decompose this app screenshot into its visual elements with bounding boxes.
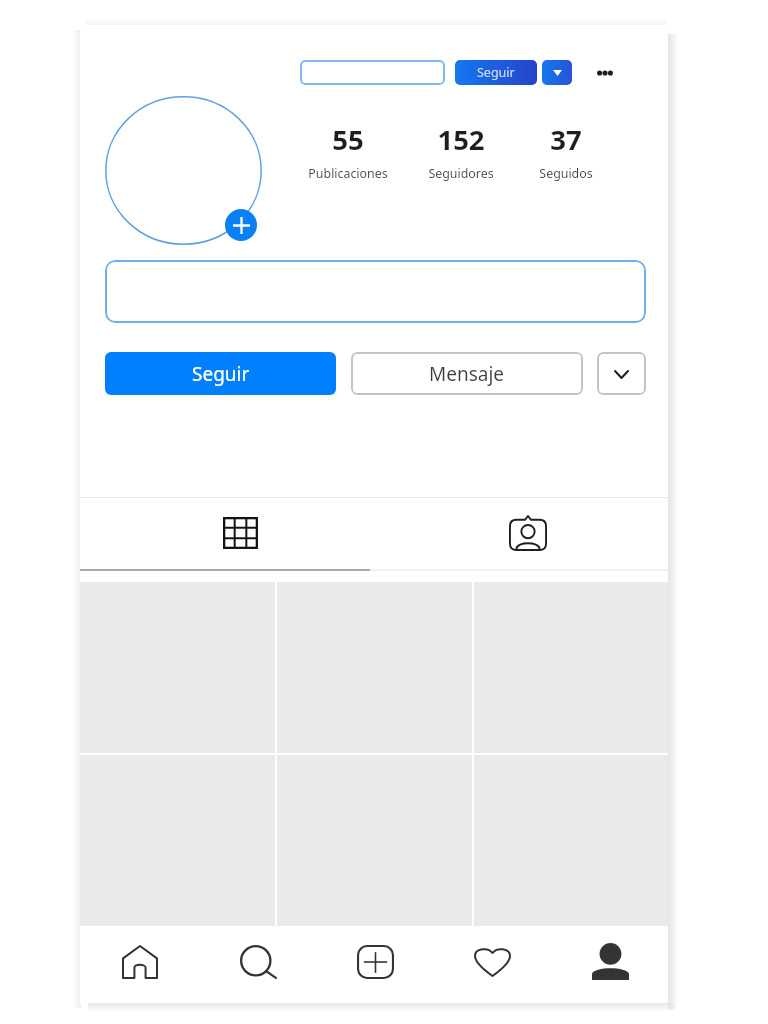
button[interactable]: 37 (486, 121, 646, 182)
button[interactable]: Mensaje (351, 352, 583, 395)
staticText: Seguidores (428, 165, 494, 182)
button[interactable]: 152 (381, 121, 541, 182)
button[interactable]: Posts (80, 498, 374, 594)
staticText: 37 (550, 121, 582, 158)
staticText: Seguir (477, 64, 515, 81)
staticText: Seguidos (539, 165, 593, 182)
button[interactable]: More options (589, 57, 621, 89)
button[interactable]: Seguir (105, 352, 336, 395)
button[interactable]: Profile (554, 926, 666, 1003)
staticText: 152 (437, 121, 485, 158)
staticText: Publicaciones (308, 165, 388, 182)
button[interactable]: 55 (268, 121, 428, 182)
button[interactable]: More actions (597, 352, 646, 395)
button[interactable]: Follow options (542, 60, 572, 85)
button[interactable]: Username field (300, 60, 445, 85)
button[interactable]: Bio (105, 260, 646, 323)
button[interactable]: Activity (436, 926, 548, 1003)
staticText: Seguir (192, 361, 250, 387)
button[interactable]: Seguir (455, 60, 537, 85)
button[interactable]: Search (202, 926, 314, 1003)
staticText: Mensaje (429, 361, 505, 387)
button[interactable]: Create (319, 926, 431, 1003)
button[interactable]: Add to story (225, 209, 257, 241)
button[interactable]: Home (84, 926, 196, 1003)
button[interactable]: Tagged (374, 498, 668, 594)
staticText: 55 (332, 121, 364, 158)
